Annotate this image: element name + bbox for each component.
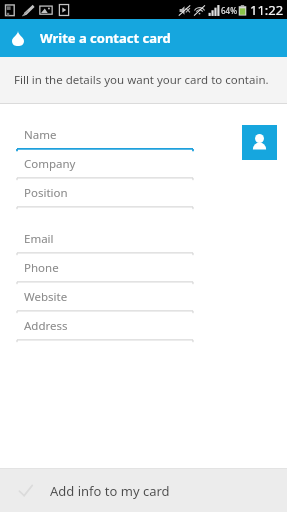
button[interactable]: Name xyxy=(0,122,227,151)
button[interactable]: Phone xyxy=(0,255,227,284)
button[interactable]: Address xyxy=(0,313,227,342)
button[interactable]: Pick contact from address book xyxy=(242,125,277,160)
button[interactable]: Website xyxy=(0,284,227,313)
staticText: Address xyxy=(24,318,68,334)
button[interactable]: Position xyxy=(0,180,227,209)
staticText: Fill in the details you want your card t… xyxy=(14,72,269,88)
staticText: Position xyxy=(24,185,68,201)
staticText: Company xyxy=(24,156,76,172)
button[interactable]: Email xyxy=(0,226,227,255)
staticText: Write a contact card xyxy=(40,29,171,47)
staticText: Email xyxy=(24,231,54,247)
staticText: 64% xyxy=(221,5,237,16)
staticText: Add info to my card xyxy=(50,482,170,500)
staticText: 11:22 xyxy=(250,1,284,19)
button[interactable]: Add info to my card xyxy=(0,469,287,512)
staticText: Phone xyxy=(24,260,59,276)
button[interactable]: Company xyxy=(0,151,227,180)
staticText: Name xyxy=(24,127,57,143)
staticText: Website xyxy=(24,289,68,305)
